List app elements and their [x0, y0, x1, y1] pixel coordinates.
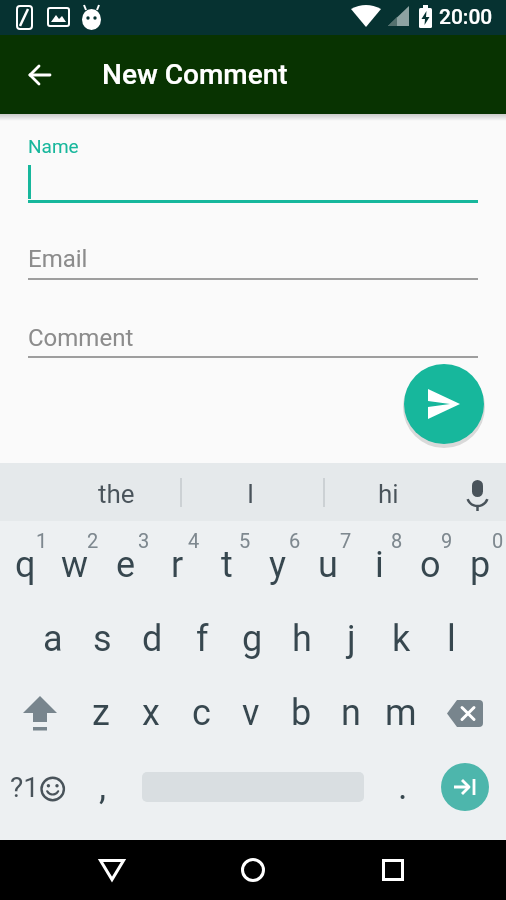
- button[interactable]: b: [276, 688, 326, 738]
- button[interactable]: [28, 158, 478, 202]
- button[interactable]: p: [455, 540, 505, 590]
- button[interactable]: y: [253, 540, 303, 590]
- button[interactable]: [14, 688, 66, 738]
- staticText: t: [221, 544, 233, 586]
- staticText: 8: [391, 529, 403, 552]
- staticText: Comment: [28, 324, 134, 352]
- staticText: s: [93, 618, 112, 660]
- staticText: I: [247, 479, 255, 509]
- staticText: 4: [188, 529, 200, 552]
- button[interactable]: s: [77, 614, 127, 664]
- staticText: k: [392, 618, 411, 660]
- staticText: i: [375, 544, 384, 586]
- button[interactable]: u: [303, 540, 353, 590]
- button[interactable]: r: [152, 540, 202, 590]
- button[interactable]: k: [376, 614, 426, 664]
- button[interactable]: i: [354, 540, 404, 590]
- staticText: 2: [87, 529, 99, 552]
- button[interactable]: a: [28, 614, 78, 664]
- staticText: m: [385, 692, 417, 734]
- button[interactable]: I: [186, 465, 316, 523]
- button[interactable]: m: [376, 688, 426, 738]
- staticText: d: [142, 618, 163, 660]
- button[interactable]: l: [426, 614, 476, 664]
- staticText: 6: [289, 529, 301, 552]
- staticText: ?1: [10, 771, 39, 804]
- staticText: e: [116, 544, 136, 586]
- button[interactable]: j: [326, 614, 376, 664]
- staticText: Email: [28, 245, 88, 273]
- staticText: 3: [138, 529, 150, 552]
- staticText: 7: [340, 529, 352, 552]
- staticText: p: [470, 544, 491, 586]
- button[interactable]: [441, 763, 489, 811]
- button[interactable]: [16, 51, 64, 99]
- button[interactable]: x: [126, 688, 176, 738]
- button[interactable]: hi: [323, 465, 453, 523]
- button[interactable]: h: [277, 614, 327, 664]
- staticText: n: [341, 692, 361, 734]
- staticText: ,: [99, 766, 107, 808]
- button[interactable]: e: [101, 540, 151, 590]
- staticText: f: [196, 618, 209, 660]
- button[interactable]: q: [0, 540, 50, 590]
- staticText: r: [171, 544, 184, 586]
- staticText: the: [98, 479, 135, 509]
- button[interactable]: ,: [78, 762, 128, 812]
- staticText: o: [420, 544, 441, 586]
- button[interactable]: g: [227, 614, 277, 664]
- staticText: v: [242, 692, 260, 734]
- staticText: g: [242, 618, 263, 660]
- button[interactable]: ?1: [10, 762, 70, 812]
- staticText: 5: [239, 529, 251, 552]
- button[interactable]: w: [50, 540, 100, 590]
- staticText: x: [142, 692, 160, 734]
- staticText: hi: [378, 479, 399, 509]
- button[interactable]: .: [378, 762, 428, 812]
- button[interactable]: [229, 846, 277, 894]
- staticText: Name: [28, 135, 79, 155]
- staticText: New Comment: [102, 58, 288, 91]
- button[interactable]: d: [127, 614, 177, 664]
- button[interactable]: f: [177, 614, 227, 664]
- button[interactable]: [369, 846, 417, 894]
- staticText: z: [92, 692, 110, 734]
- button[interactable]: v: [226, 688, 276, 738]
- staticText: 9: [441, 529, 453, 552]
- button[interactable]: [88, 846, 136, 894]
- staticText: l: [447, 618, 456, 660]
- button[interactable]: n: [326, 688, 376, 738]
- staticText: h: [292, 618, 312, 660]
- staticText: c: [192, 692, 211, 734]
- button[interactable]: [404, 364, 484, 444]
- staticText: 1: [36, 529, 48, 552]
- staticText: w: [61, 544, 89, 586]
- staticText: q: [15, 544, 36, 586]
- staticText: 20:00: [439, 5, 493, 30]
- staticText: u: [318, 544, 338, 586]
- button[interactable]: Email: [28, 240, 478, 278]
- button[interactable]: c: [176, 688, 226, 738]
- staticText: b: [291, 692, 312, 734]
- staticText: j: [347, 618, 356, 660]
- button[interactable]: z: [76, 688, 126, 738]
- button[interactable]: t: [202, 540, 252, 590]
- button[interactable]: o: [405, 540, 455, 590]
- staticText: 0: [492, 529, 504, 552]
- staticText: a: [43, 618, 63, 660]
- staticText: .: [398, 766, 408, 808]
- button[interactable]: the: [51, 465, 181, 523]
- button[interactable]: [439, 688, 491, 738]
- staticText: y: [269, 544, 287, 586]
- button[interactable]: Comment: [28, 319, 478, 357]
